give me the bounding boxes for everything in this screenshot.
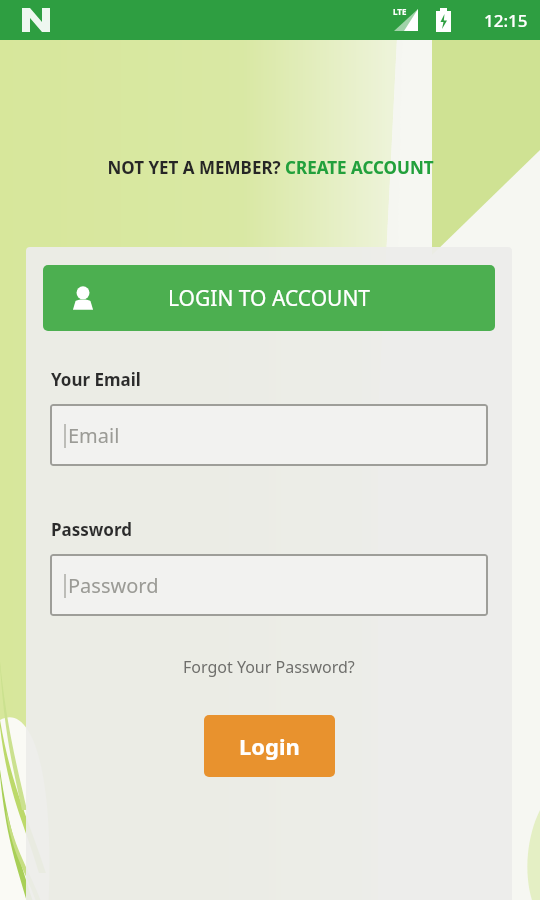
staticText: LOGIN TO ACCOUNT [168, 284, 371, 313]
staticText: LTE [393, 6, 407, 17]
button[interactable]: LOGIN TO ACCOUNT [43, 265, 495, 331]
staticText: Forgot Your Password? [183, 656, 355, 678]
button[interactable]: Email [50, 404, 488, 466]
staticText: Password [51, 518, 132, 541]
staticText: 12:15 [484, 9, 528, 32]
staticText: NOT YET A MEMBER? CREATE ACCOUNT [107, 156, 434, 179]
button[interactable]: Password [50, 554, 488, 616]
button[interactable]: NOT YET A MEMBER? CREATE ACCOUNT [99, 152, 442, 183]
button[interactable]: Login [204, 715, 335, 777]
button[interactable]: Forgot Your Password? [173, 652, 365, 682]
staticText: Login [239, 731, 300, 761]
staticText: Password [68, 572, 159, 599]
staticText: Email [68, 422, 120, 449]
staticText: Your Email [51, 368, 141, 391]
